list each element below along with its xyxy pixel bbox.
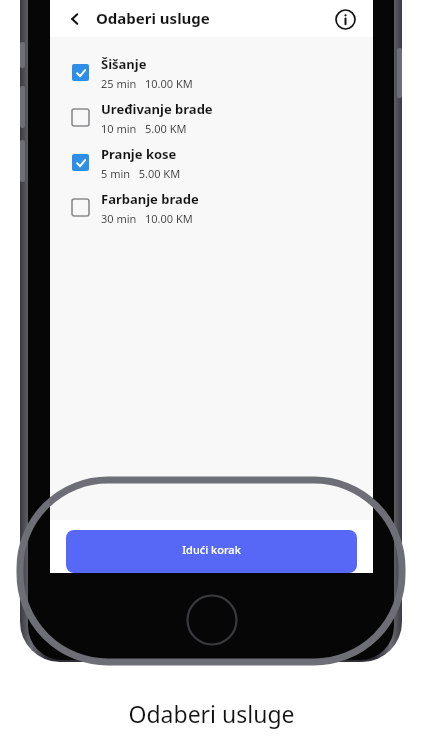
- button[interactable]: Idući korak: [66, 530, 357, 573]
- staticText: 30 min 10.00 KM: [101, 211, 193, 226]
- staticText: 10 min 5.00 KM: [101, 121, 187, 136]
- staticText: Odaberi usluge: [96, 8, 210, 28]
- button[interactable]: Pranje kose: [50, 140, 373, 185]
- staticText: 25 min 10.00 KM: [101, 76, 193, 91]
- button[interactable]: Šišanje: [50, 50, 373, 95]
- button[interactable]: Back: [58, 2, 92, 36]
- staticText: 5 min 5.00 KM: [101, 166, 181, 181]
- staticText: Uređivanje brade: [101, 100, 213, 118]
- staticText: Pranje kose: [101, 145, 177, 163]
- button[interactable]: Farbanje brade: [50, 185, 373, 230]
- staticText: Idući korak: [182, 542, 241, 557]
- button[interactable]: Information: [330, 4, 360, 34]
- staticText: Odaberi usluge: [128, 698, 295, 729]
- staticText: Farbanje brade: [101, 190, 199, 208]
- button[interactable]: Uređivanje brade: [50, 95, 373, 140]
- staticText: Šišanje: [101, 55, 147, 73]
